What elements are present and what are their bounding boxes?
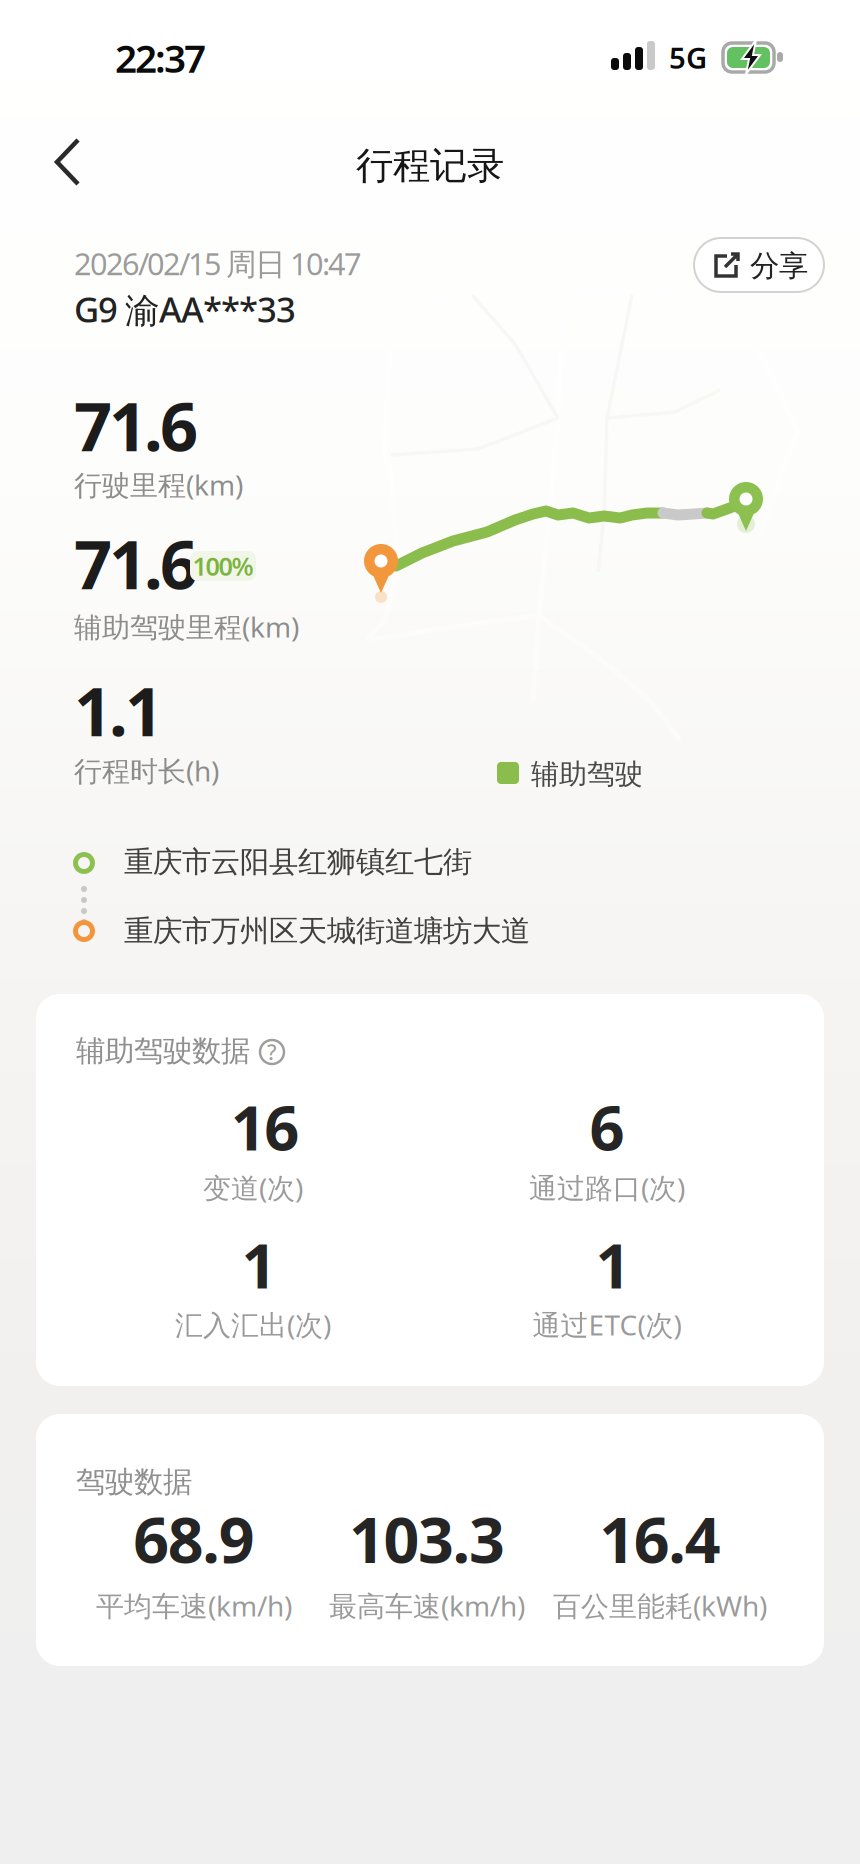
staticText: 16: [231, 1086, 299, 1167]
staticText: 5G: [669, 38, 707, 77]
staticText: 汇入汇出(次): [175, 1306, 331, 1343]
staticText: 22:37: [115, 32, 206, 83]
staticText: ?: [267, 1038, 277, 1066]
staticText: 71.6: [74, 381, 198, 469]
staticText: 1: [595, 1224, 630, 1305]
staticText: 辅助驾驶里程(km): [74, 608, 299, 645]
staticText: 辅助驾驶数据: [76, 1033, 250, 1069]
staticText: 重庆市云阳县红狮镇红七街: [124, 844, 472, 880]
staticText: 100%: [192, 549, 253, 583]
staticText: 行程记录: [356, 143, 504, 189]
staticText: 最高车速(km/h): [329, 1587, 525, 1624]
staticText: 行程时长(h): [74, 752, 219, 789]
staticText: 通过路口(次): [529, 1169, 685, 1206]
staticText: 1.1: [74, 666, 163, 754]
staticText: 16.4: [599, 1497, 721, 1580]
staticText: 变道(次): [203, 1169, 303, 1206]
staticText: 重庆市万州区天城街道塘坊大道: [124, 913, 530, 949]
staticText: 103.3: [349, 1497, 505, 1580]
staticText: 通过ETC(次): [532, 1306, 681, 1343]
staticText: 辅助驾驶: [531, 757, 643, 791]
staticText: G9 渝AA***33: [74, 286, 296, 332]
staticText: 2026/02/15 周日 10:47: [74, 243, 362, 284]
button[interactable]: ?: [258, 1038, 286, 1066]
staticText: 行驶里程(km): [74, 466, 243, 503]
staticText: 68.9: [133, 1497, 255, 1580]
staticText: 6: [589, 1086, 624, 1167]
staticText: 1: [241, 1224, 276, 1305]
staticText: 平均车速(km/h): [96, 1587, 292, 1624]
staticText: 分享: [750, 248, 808, 284]
staticText: 百公里能耗(kWh): [553, 1587, 767, 1624]
button[interactable]: 分享: [694, 238, 824, 292]
staticText: 71.6: [74, 519, 198, 607]
staticText: 驾驶数据: [76, 1464, 192, 1500]
